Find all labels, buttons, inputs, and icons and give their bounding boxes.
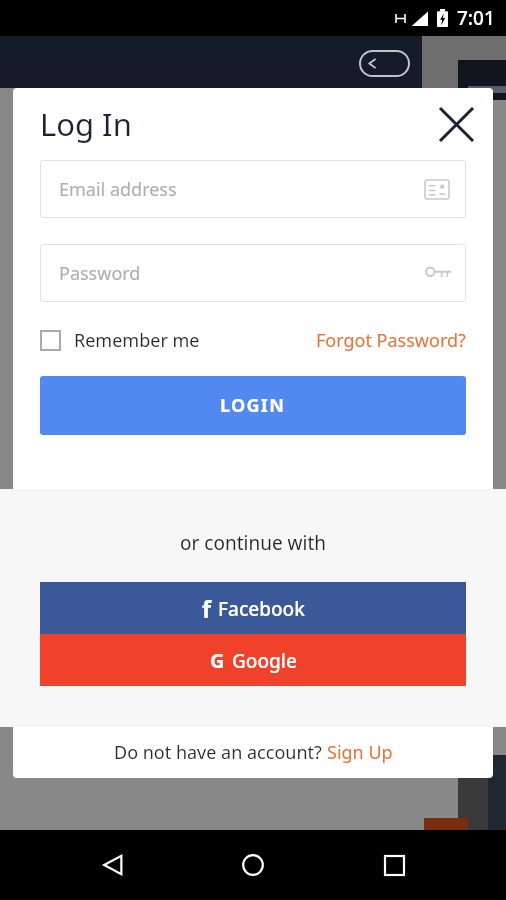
button[interactable]: Back [85,837,141,893]
staticText: 7:01 [457,5,495,31]
staticText: Do not have an account? [114,740,327,765]
button[interactable]: Do not have an account? [114,740,393,765]
button[interactable]: Recent apps [366,837,422,893]
button[interactable]: G [40,634,466,686]
staticText: Facebook [218,596,305,622]
button[interactable]: Email address [40,160,466,218]
staticText: Email address [59,177,177,202]
button[interactable]: Home [225,837,281,893]
button[interactable]: f [40,582,466,634]
button[interactable]: LOGIN [40,376,466,435]
button[interactable]: Password [40,244,466,302]
button[interactable]: Back [359,50,410,77]
button[interactable]: Close [431,99,481,149]
staticText: G [210,647,225,674]
staticText: Sign Up [327,740,393,765]
staticText: LOGIN [220,393,286,418]
staticText: Password [59,261,141,286]
staticText: Log In [40,103,132,145]
button[interactable]: Remember me [40,328,200,353]
button[interactable]: Forgot Password? [316,328,466,353]
staticText: or continue with [0,530,506,556]
staticText: Google [232,648,297,674]
staticText: Remember me [74,328,200,353]
staticText: Forgot Password? [316,328,466,353]
staticText: f [202,593,211,624]
